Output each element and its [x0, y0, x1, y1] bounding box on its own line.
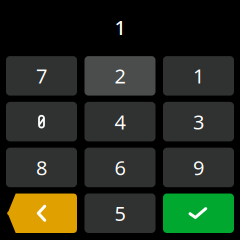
button[interactable]: Confirm — [163, 193, 234, 233]
staticText: 9 — [193, 154, 204, 181]
staticText: 3 — [193, 108, 204, 135]
staticText: 5 — [114, 200, 125, 227]
staticText: 7 — [36, 63, 47, 89]
button[interactable]: 8 — [6, 148, 77, 187]
staticText: 1 — [114, 14, 125, 41]
button[interactable]: 6 — [84, 148, 155, 187]
staticText: 2 — [114, 63, 125, 89]
button[interactable]: 9 — [163, 148, 234, 187]
button[interactable]: 0 — [6, 102, 77, 141]
button[interactable]: 2 — [84, 56, 155, 96]
staticText: 6 — [114, 154, 125, 181]
button[interactable]: 4 — [84, 102, 155, 141]
button[interactable]: Delete — [6, 193, 77, 233]
staticText: 4 — [114, 108, 125, 135]
button[interactable]: 5 — [84, 193, 155, 233]
button[interactable]: 3 — [163, 102, 234, 141]
staticText: 1 — [193, 63, 204, 89]
button[interactable]: 1 — [163, 56, 234, 96]
button[interactable]: 7 — [6, 56, 77, 96]
staticText: 8 — [36, 154, 47, 181]
